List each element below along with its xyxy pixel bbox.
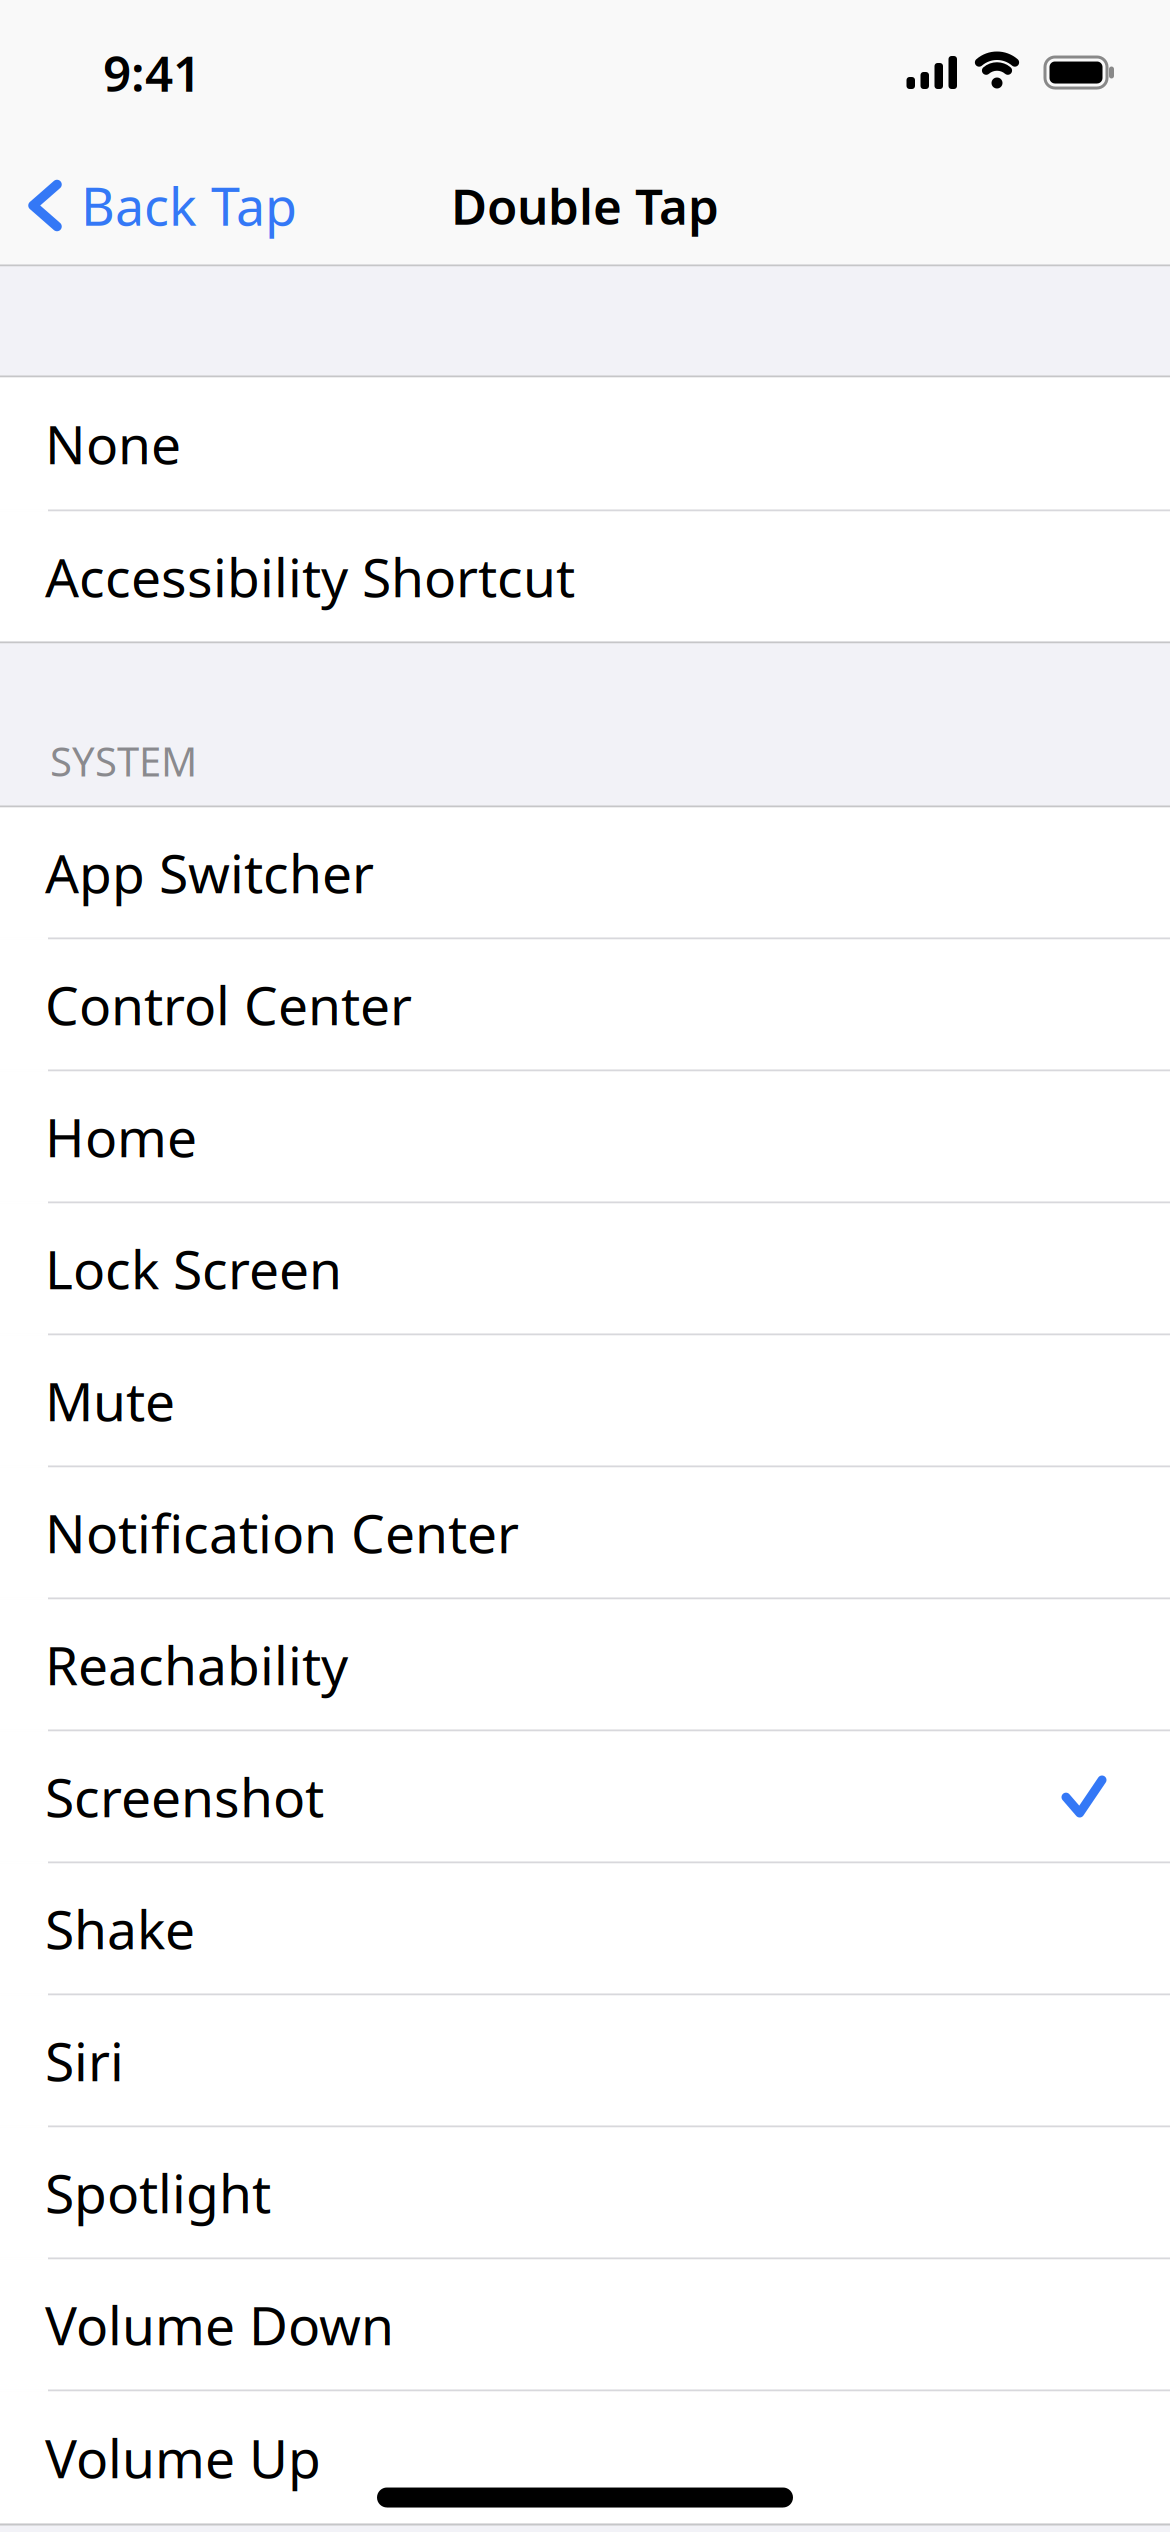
- button[interactable]: Volume Up: [0, 2391, 1170, 2523]
- staticText: None: [45, 408, 181, 479]
- staticText: Double Tap: [451, 173, 719, 238]
- staticText: Mute: [45, 1365, 175, 1436]
- staticText: Shake: [45, 1893, 195, 1964]
- staticText: Reachability: [45, 1629, 348, 1700]
- staticText: Screenshot: [45, 1761, 324, 1832]
- staticText: Spotlight: [45, 2157, 271, 2228]
- staticText: Accessibility Shortcut: [45, 541, 575, 612]
- button[interactable]: Control Center: [0, 939, 1170, 1069]
- button[interactable]: Shake: [0, 1863, 1170, 1993]
- button[interactable]: App Switcher: [0, 807, 1170, 937]
- staticText: Lock Screen: [45, 1233, 342, 1304]
- button[interactable]: Accessibility Shortcut: [0, 511, 1170, 641]
- staticText: SYSTEM: [50, 734, 197, 787]
- button[interactable]: None: [0, 377, 1170, 509]
- button[interactable]: Screenshot: [0, 1731, 1170, 1861]
- button[interactable]: Back: [0, 171, 297, 240]
- button[interactable]: Reachability: [0, 1599, 1170, 1729]
- button[interactable]: Notification Center: [0, 1467, 1170, 1597]
- button[interactable]: Home: [0, 1071, 1170, 1201]
- staticText: Volume Up: [45, 2422, 321, 2493]
- button[interactable]: Siri: [0, 1995, 1170, 2125]
- staticText: App Switcher: [45, 837, 374, 908]
- staticText: Siri: [45, 2025, 124, 2096]
- staticText: Back Tap: [81, 171, 297, 240]
- staticText: Volume Down: [45, 2289, 394, 2360]
- staticText: Notification Center: [45, 1497, 519, 1568]
- button[interactable]: Lock Screen: [0, 1203, 1170, 1333]
- button[interactable]: Spotlight: [0, 2127, 1170, 2257]
- staticText: Home: [45, 1101, 197, 1172]
- button[interactable]: Volume Down: [0, 2259, 1170, 2389]
- staticText: 9:41: [103, 40, 201, 105]
- staticText: Control Center: [45, 969, 412, 1040]
- button[interactable]: Mute: [0, 1335, 1170, 1465]
